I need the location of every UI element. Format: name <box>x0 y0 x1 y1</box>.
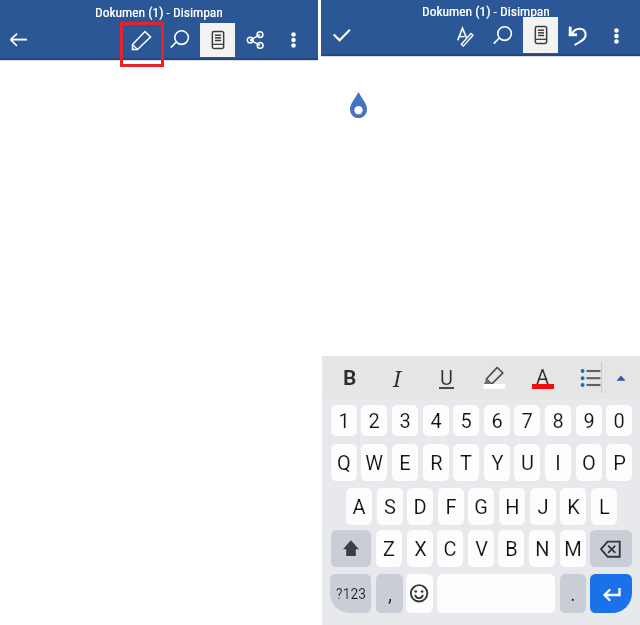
button[interactable]: C <box>437 530 463 567</box>
staticText: O <box>582 451 596 474</box>
button[interactable]: D <box>407 488 433 525</box>
staticText: Z <box>383 537 395 560</box>
staticText: 2 <box>368 409 380 432</box>
staticText: N <box>535 537 550 560</box>
staticText: L <box>599 495 610 518</box>
button[interactable]: Emoji <box>406 574 433 613</box>
button[interactable]: O <box>576 444 602 481</box>
button[interactable]: Search <box>482 16 522 56</box>
staticText: Dokumen (1) - Disimpan <box>422 3 550 19</box>
button[interactable]: Edit <box>122 20 162 60</box>
button[interactable]: S <box>377 488 403 525</box>
button[interactable]: A <box>346 488 372 525</box>
button[interactable]: 6 <box>484 405 510 436</box>
button[interactable]: X <box>407 530 433 567</box>
button[interactable]: Bullets <box>571 358 611 398</box>
button[interactable]: , <box>376 574 403 613</box>
button[interactable]: 7 <box>514 405 540 436</box>
button[interactable]: Z <box>376 530 402 567</box>
button[interactable]: K <box>560 488 586 525</box>
staticText: S <box>384 495 396 518</box>
staticText: F <box>445 495 457 518</box>
staticText: U <box>521 451 534 474</box>
staticText: R <box>430 451 443 474</box>
staticText: P <box>613 451 626 474</box>
staticText: Dokumen (1) - Disimpan <box>95 4 223 20</box>
staticText: . <box>570 582 576 605</box>
button[interactable]: U <box>514 444 540 481</box>
staticText: , <box>388 582 392 605</box>
button[interactable]: 8 <box>545 405 571 436</box>
button[interactable]: Q <box>331 444 357 481</box>
button[interactable]: 2 <box>361 405 387 436</box>
staticText: A <box>352 495 366 518</box>
button[interactable]: 1 <box>331 405 357 436</box>
button[interactable]: V <box>468 530 494 567</box>
button[interactable]: B <box>498 530 524 567</box>
button[interactable]: 0 <box>606 405 632 436</box>
button[interactable]: Y <box>484 444 510 481</box>
staticText: U <box>440 366 453 389</box>
button[interactable]: M <box>560 530 586 567</box>
button[interactable]: Highlight <box>474 358 514 398</box>
staticText: I <box>555 451 561 474</box>
button[interactable]: Format text <box>445 16 485 56</box>
button[interactable]: Mobile view <box>523 17 558 53</box>
button[interactable]: Share <box>235 20 275 60</box>
button[interactable]: More options <box>273 20 313 60</box>
staticText: T <box>460 451 472 474</box>
button[interactable]: More options <box>596 16 636 56</box>
staticText: 4 <box>430 409 442 432</box>
button[interactable]: T <box>453 444 479 481</box>
button[interactable]: 4 <box>423 405 449 436</box>
button[interactable]: H <box>499 488 525 525</box>
button[interactable]: Underline <box>426 357 466 397</box>
button[interactable]: Search <box>159 20 199 60</box>
button[interactable]: Font colour <box>523 356 563 396</box>
button[interactable]: Bold <box>330 358 370 398</box>
staticText: A <box>536 365 550 388</box>
staticText: B <box>505 537 518 560</box>
button[interactable]: J <box>530 488 556 525</box>
staticText: H <box>505 495 520 518</box>
button[interactable]: Collapse <box>601 358 640 398</box>
staticText: 7 <box>521 409 533 432</box>
staticText: D <box>413 495 427 518</box>
button[interactable]: N <box>529 530 555 567</box>
button[interactable]: P <box>606 444 632 481</box>
button[interactable]: 5 <box>453 405 479 436</box>
staticText: I <box>393 363 402 393</box>
button[interactable]: R <box>423 444 449 481</box>
button[interactable]: E <box>392 444 418 481</box>
staticText: 9 <box>583 409 595 432</box>
staticText: J <box>537 495 549 518</box>
button[interactable]: F <box>438 488 464 525</box>
button[interactable]: Shift <box>331 530 371 567</box>
button[interactable]: I <box>545 444 571 481</box>
button[interactable]: ?123 <box>330 574 371 613</box>
staticText: 1 <box>338 409 350 432</box>
staticText: 8 <box>552 409 564 432</box>
button[interactable]: 9 <box>576 405 602 436</box>
button[interactable]: Italic <box>377 358 417 398</box>
staticText: Y <box>491 451 504 474</box>
button[interactable]: 3 <box>392 405 418 436</box>
button[interactable]: W <box>361 444 387 481</box>
staticText: E <box>399 451 411 474</box>
staticText: B <box>343 366 357 391</box>
staticText: K <box>567 495 580 518</box>
button[interactable]: G <box>468 488 494 525</box>
button[interactable]: Mobile view <box>200 23 235 57</box>
button[interactable]: Undo <box>558 16 598 56</box>
staticText: M <box>564 537 582 560</box>
button[interactable]: . <box>560 574 586 613</box>
button[interactable]: Back <box>0 20 40 60</box>
staticText: 5 <box>460 409 472 432</box>
staticText: ?123 <box>336 586 366 602</box>
staticText: C <box>443 537 457 560</box>
button[interactable]: Done <box>323 16 363 56</box>
button[interactable]: L <box>591 488 617 525</box>
button[interactable]: Enter <box>590 574 632 613</box>
button[interactable]: Backspace <box>590 530 632 567</box>
